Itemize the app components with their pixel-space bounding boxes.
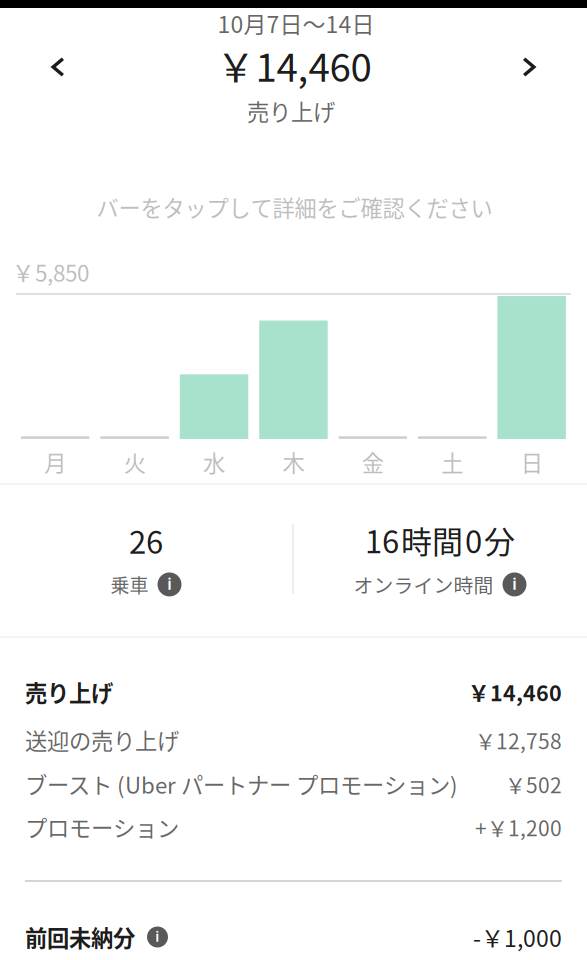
staticText: 木 — [282, 446, 304, 478]
staticText: i — [155, 929, 159, 945]
staticText: +￥1,200 — [475, 812, 562, 842]
staticText: 送迎の売り上げ — [25, 724, 179, 756]
staticText: ￥14,460 — [216, 37, 371, 93]
staticText: バーをタップして詳細をご確認ください — [96, 191, 492, 223]
staticText: 26 — [129, 518, 163, 563]
staticText: 日 — [521, 446, 543, 478]
staticText: 金 — [362, 446, 384, 478]
staticText: 10月7日〜14日 — [217, 6, 374, 40]
staticText: オンライン時間 — [353, 570, 493, 599]
staticText: ブースト (Uber パートナー プロモーション) — [25, 768, 458, 800]
staticText: ￥12,758 — [475, 725, 562, 755]
staticText: 16 時間 0 分 — [365, 517, 515, 562]
staticText: 売り上げ — [247, 95, 335, 127]
staticText: プロモーション — [25, 811, 179, 843]
staticText: i — [512, 575, 516, 593]
staticText: 乗車 — [110, 571, 148, 598]
staticText: 火 — [124, 446, 146, 478]
staticText: ￥502 — [505, 769, 562, 799]
staticText: ￥5,850 — [12, 256, 89, 288]
staticText: 土 — [441, 446, 463, 478]
staticText: 前回未納分 — [25, 921, 135, 953]
staticText: i — [167, 575, 171, 593]
staticText: 売り上げ — [25, 676, 113, 708]
button[interactable]: Previous week — [21, 30, 95, 104]
staticText: -￥1,000 — [473, 920, 562, 954]
staticText: ￥14,460 — [468, 676, 562, 707]
staticText: 月 — [44, 446, 66, 478]
staticText: 水 — [203, 446, 225, 478]
button[interactable]: Next week — [492, 30, 566, 104]
